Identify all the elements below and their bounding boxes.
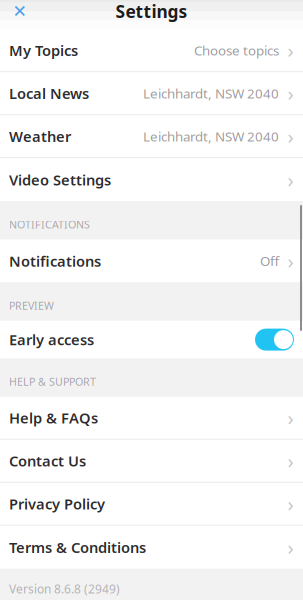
staticText: Terms & Conditions [9, 537, 146, 557]
staticText: › [287, 490, 293, 517]
button[interactable]: My Topics [0, 29, 303, 72]
staticText: Notifications [9, 251, 101, 271]
staticText: › [287, 447, 293, 474]
button[interactable]: Early access toggle [255, 329, 294, 351]
staticText: Help & FAQs [9, 408, 98, 427]
staticText: Local News [9, 83, 89, 103]
staticText: › [287, 166, 293, 193]
button[interactable]: Terms & Conditions [0, 526, 303, 569]
staticText: › [287, 534, 293, 561]
staticText: Version 8.6.8 (2949) [9, 581, 120, 597]
staticText: › [287, 404, 293, 431]
staticText: › [287, 80, 293, 107]
staticText: Leichhardt, NSW 2040 [143, 84, 279, 102]
staticText: My Topics [9, 40, 78, 60]
staticText: › [287, 123, 293, 150]
staticText: Video Settings [9, 170, 111, 189]
button[interactable]: Notifications [0, 239, 303, 282]
staticText: Early access [9, 330, 94, 349]
button[interactable]: Privacy Policy [0, 483, 303, 526]
staticText: Choose topics [194, 41, 279, 59]
button[interactable]: Video Settings [0, 158, 303, 201]
button[interactable]: Contact Us [0, 440, 303, 483]
staticText: › [287, 248, 293, 274]
staticText: Leichhardt, NSW 2040 [143, 127, 279, 145]
button[interactable]: Local News [0, 72, 303, 115]
staticText: Weather [9, 126, 71, 146]
button[interactable]: Weather [0, 115, 303, 158]
button[interactable]: Close [0, 0, 40, 29]
staticText: ✕ [12, 1, 27, 21]
staticText: PREVIEW [9, 298, 54, 313]
staticText: Contact Us [9, 451, 86, 470]
staticText: HELP & SUPPORT [9, 375, 96, 389]
staticText: Off [260, 252, 279, 270]
button[interactable]: Help & FAQs [0, 397, 303, 440]
staticText: › [287, 37, 293, 64]
staticText: Settings [115, 0, 187, 23]
staticText: NOTIFICATIONS [9, 217, 90, 231]
staticText: Privacy Policy [9, 494, 105, 513]
